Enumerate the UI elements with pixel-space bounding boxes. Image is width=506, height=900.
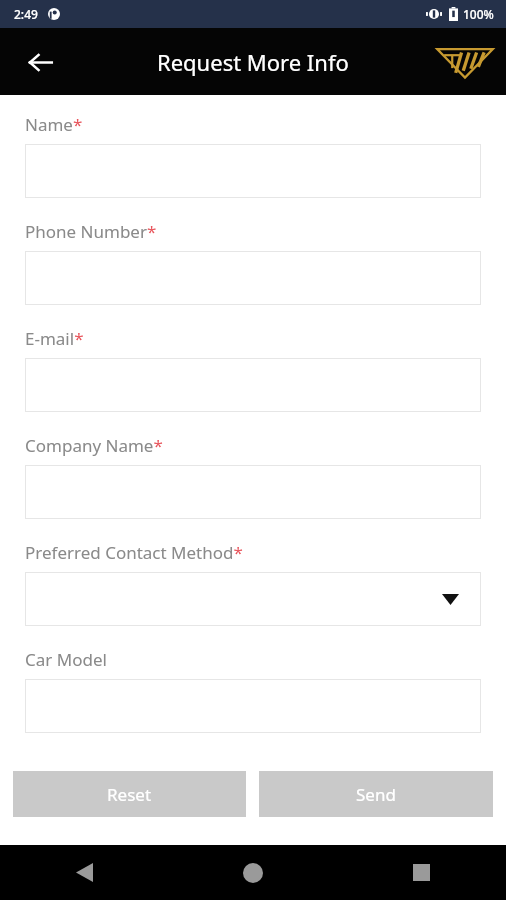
button[interactable]	[25, 251, 481, 305]
button[interactable]	[25, 358, 481, 412]
button[interactable]: Home	[168, 845, 337, 900]
button[interactable]: Reset	[13, 771, 246, 817]
button[interactable]: Recent apps	[337, 845, 506, 900]
button[interactable]	[25, 144, 481, 198]
button[interactable]: Back	[16, 38, 64, 86]
staticText: Company Name*	[25, 434, 163, 457]
staticText: 2:49	[14, 6, 38, 22]
staticText: Preferred Contact Method*	[25, 541, 243, 564]
staticText: E-mail*	[25, 327, 84, 350]
button[interactable]	[25, 679, 481, 733]
button[interactable]: Send	[259, 771, 493, 817]
staticText: Reset	[107, 783, 152, 806]
staticText: Send	[356, 783, 396, 806]
staticText: Car Model	[25, 648, 107, 671]
button[interactable]: Back	[0, 845, 168, 900]
button[interactable]	[25, 465, 481, 519]
staticText: Request More Info	[157, 47, 349, 77]
staticText: Name*	[25, 113, 83, 136]
staticText: 100%	[463, 6, 494, 22]
button[interactable]	[25, 572, 481, 626]
staticText: Phone Number*	[25, 220, 157, 243]
button[interactable]: Brand logo	[434, 40, 496, 84]
